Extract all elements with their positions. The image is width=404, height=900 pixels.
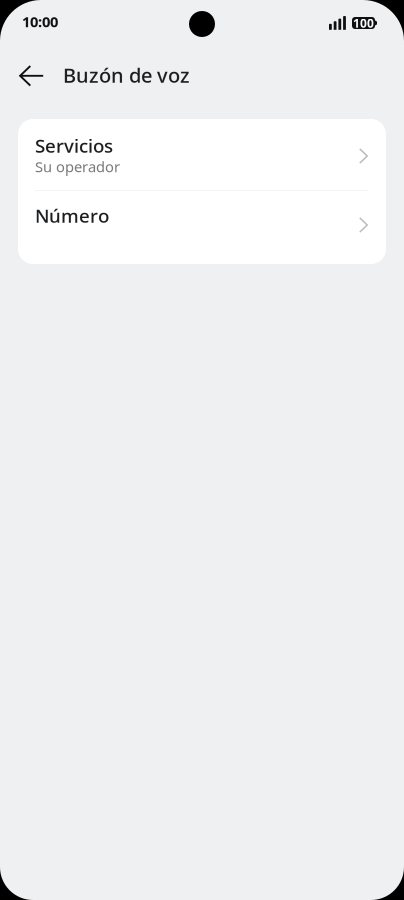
staticText: 10:00 (22, 12, 58, 31)
staticText: Número (35, 203, 109, 228)
staticText: 100 (353, 15, 374, 31)
button[interactable]: Back (9, 50, 53, 98)
staticText: Servicios (35, 133, 113, 158)
button[interactable]: Servicios (18, 119, 386, 190)
button[interactable]: Número (18, 191, 386, 264)
staticText: Su operador (35, 157, 120, 176)
staticText: Buzón de voz (63, 62, 190, 88)
